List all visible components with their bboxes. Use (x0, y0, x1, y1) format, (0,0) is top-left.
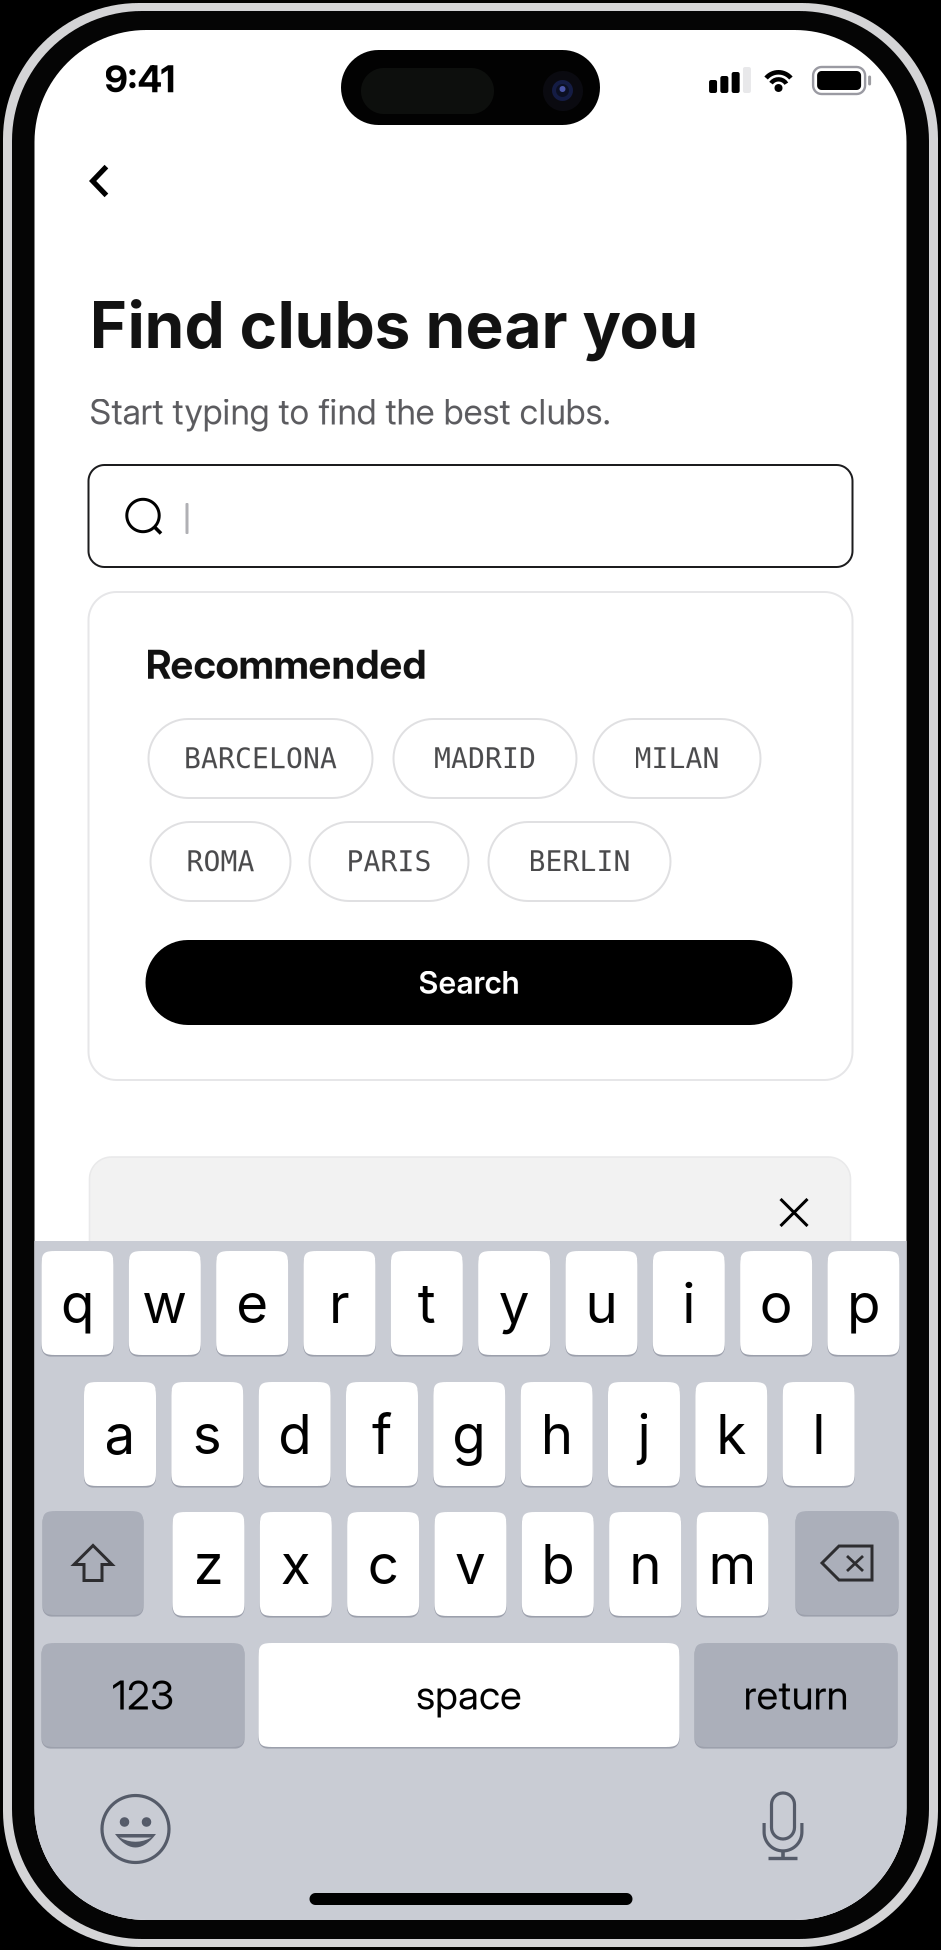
staticText: ROMA (186, 845, 254, 878)
button[interactable]: Back (56, 138, 142, 224)
staticText: o (760, 1270, 793, 1336)
button[interactable] (88, 465, 852, 567)
button[interactable]: BERLIN (488, 822, 670, 901)
button[interactable]: Delete (795, 1511, 898, 1615)
button[interactable]: return (694, 1642, 897, 1748)
button[interactable]: BARCELONA (148, 719, 372, 798)
button[interactable]: x (260, 1511, 332, 1617)
staticText: q (61, 1270, 94, 1336)
staticText: x (281, 1531, 311, 1597)
button[interactable]: o (740, 1250, 812, 1356)
button[interactable]: PARIS (309, 822, 468, 901)
staticText: BARCELONA (184, 742, 337, 775)
staticText: s (193, 1401, 222, 1467)
staticText: v (455, 1531, 486, 1597)
staticText: Find clubs near you (89, 286, 698, 363)
button[interactable]: r (303, 1250, 375, 1356)
button[interactable]: s (171, 1381, 243, 1487)
staticText: r (329, 1270, 350, 1336)
button[interactable]: a (84, 1381, 156, 1487)
button[interactable]: m (696, 1511, 768, 1617)
button[interactable]: q (41, 1250, 113, 1356)
button[interactable]: MILAN (593, 719, 760, 798)
button[interactable]: n (609, 1511, 681, 1617)
button[interactable]: z (172, 1511, 244, 1617)
button[interactable]: p (827, 1250, 899, 1356)
staticText: 123 (112, 1671, 174, 1719)
button[interactable]: l (783, 1381, 855, 1487)
staticText: f (372, 1401, 392, 1467)
button[interactable]: w (129, 1250, 201, 1356)
button[interactable]: t (391, 1250, 463, 1356)
staticText: y (499, 1270, 530, 1336)
staticText: p (847, 1270, 880, 1336)
button[interactable]: Close (780, 1199, 807, 1226)
staticText: h (541, 1401, 573, 1467)
staticText: e (236, 1270, 268, 1336)
staticText: l (812, 1401, 825, 1467)
staticText: Search (418, 964, 519, 1001)
staticText: z (193, 1531, 223, 1597)
staticText: j (637, 1401, 650, 1467)
staticText: PARIS (346, 845, 431, 878)
staticText: b (541, 1531, 574, 1597)
button[interactable]: h (521, 1381, 593, 1487)
button[interactable]: v (434, 1511, 506, 1617)
button[interactable]: ROMA (150, 822, 290, 901)
staticText: m (708, 1531, 756, 1597)
button[interactable]: g (433, 1381, 505, 1487)
button[interactable]: MADRID (393, 719, 576, 798)
staticText: Start typing to find the best clubs. (89, 391, 610, 433)
staticText: c (368, 1531, 399, 1597)
staticText: space (416, 1671, 522, 1719)
button[interactable]: e (216, 1250, 288, 1356)
button[interactable]: y (478, 1250, 550, 1356)
staticText: g (452, 1401, 486, 1467)
button[interactable]: c (347, 1511, 419, 1617)
staticText: a (104, 1401, 135, 1467)
button[interactable]: Dictate (761, 1793, 804, 1861)
button[interactable]: d (259, 1381, 331, 1487)
button[interactable]: f (346, 1381, 418, 1487)
staticText: u (585, 1270, 617, 1336)
staticText: MADRID (434, 742, 536, 775)
staticText: k (716, 1401, 746, 1467)
staticText: MILAN (634, 742, 719, 775)
staticText: n (629, 1531, 661, 1597)
button[interactable]: i (653, 1250, 725, 1356)
staticText: Recommended (145, 640, 426, 688)
staticText: BERLIN (528, 845, 630, 878)
staticText: w (142, 1270, 187, 1336)
button[interactable]: 123 (41, 1642, 244, 1748)
button[interactable]: k (695, 1381, 767, 1487)
button[interactable]: Emoji (100, 1794, 170, 1864)
button[interactable]: Search (145, 940, 792, 1025)
staticText: i (682, 1270, 695, 1336)
staticText: d (278, 1401, 311, 1467)
staticText: t (418, 1270, 436, 1336)
button[interactable]: space (258, 1642, 679, 1748)
staticText: return (743, 1671, 848, 1719)
staticText: 9:41 (104, 56, 175, 101)
button[interactable]: b (522, 1511, 594, 1617)
button[interactable]: j (608, 1381, 680, 1487)
button[interactable]: u (565, 1250, 637, 1356)
button[interactable]: Shift (42, 1511, 143, 1615)
